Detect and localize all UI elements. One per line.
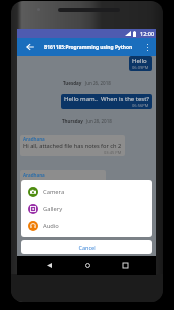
staticText: Audio (43, 222, 59, 230)
button[interactable]: Home (77, 256, 97, 275)
button[interactable]: Camera (21, 183, 152, 200)
button[interactable]: Aradhana (23, 136, 122, 155)
staticText: B161185:Programming using Python (44, 44, 133, 51)
button[interactable]: Gallery (21, 200, 152, 217)
staticText: 06:09PM (132, 65, 149, 70)
staticText: Tuesday (63, 80, 82, 86)
staticText: Thursday (62, 118, 83, 124)
staticText: Aradhana (23, 136, 45, 142)
staticText: Hello mam.. When is the test? (64, 95, 149, 103)
staticText: Aradhana (23, 172, 45, 178)
button[interactable]: Cancel (21, 240, 152, 254)
staticText: Jun 28, 2018 (86, 118, 112, 124)
staticText: 06:56PM (132, 103, 149, 108)
staticText: 03:45 PM (104, 150, 122, 155)
button[interactable]: Back (21, 38, 38, 56)
button[interactable]: More options (142, 38, 153, 56)
staticText: Gallery (43, 205, 63, 213)
button[interactable]: Audio (21, 217, 152, 234)
button[interactable]: Hello mam.. When is the test? (64, 95, 149, 108)
staticText: Cancel (78, 244, 96, 251)
staticText: Camera (43, 188, 65, 196)
button[interactable]: Recents (115, 256, 135, 275)
staticText: 12:00 (140, 30, 155, 37)
staticText: Jun 26, 2018 (85, 80, 111, 86)
button[interactable]: Aradhana (23, 172, 103, 192)
staticText: Hi all, attached file has notes for ch 2 (23, 142, 122, 150)
button[interactable]: Back (17, 38, 156, 56)
staticText: Hello (132, 57, 147, 65)
button[interactable]: Hello (132, 57, 149, 70)
button[interactable]: Back (39, 256, 59, 275)
